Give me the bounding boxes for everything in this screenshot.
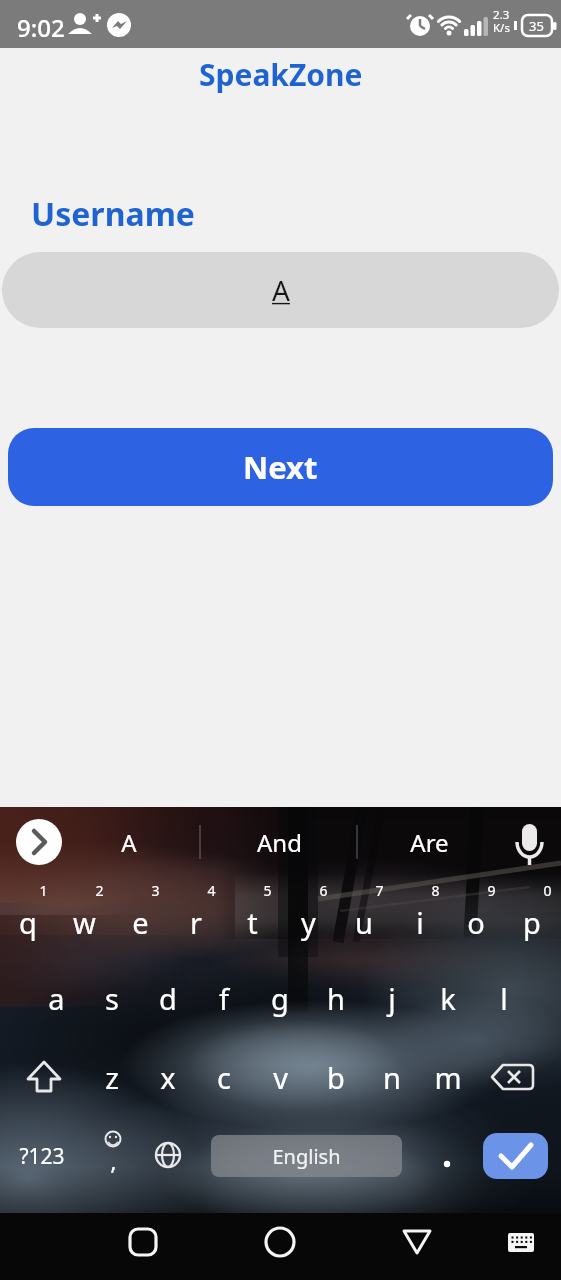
staticText: And [257, 826, 302, 859]
button[interactable]: b [308, 1048, 364, 1106]
button[interactable]: n [364, 1048, 420, 1106]
staticText: 3 [151, 881, 160, 900]
button[interactable]: Next [8, 428, 553, 506]
staticText: 7 [375, 881, 384, 900]
staticText: w [73, 903, 96, 942]
staticText: l [500, 979, 508, 1018]
staticText: 8 [431, 881, 440, 900]
staticText: ?123 [19, 1142, 65, 1171]
staticText: s [105, 979, 119, 1018]
button[interactable] [503, 815, 555, 869]
staticText: A [121, 826, 137, 859]
staticText: o [467, 903, 485, 942]
button[interactable]: q [0, 893, 56, 951]
staticText: 1 [39, 881, 48, 900]
staticText: v [273, 1058, 288, 1097]
staticText: Are [410, 826, 449, 859]
staticText: 2.3 K/s [493, 7, 510, 36]
staticText: p [523, 903, 541, 942]
button[interactable]: o [448, 893, 504, 951]
staticText: , [110, 1144, 117, 1177]
button[interactable]: g [252, 969, 308, 1027]
staticText: 9 [487, 881, 496, 900]
button[interactable]: a [28, 969, 84, 1027]
button[interactable]: English [211, 1135, 402, 1177]
staticText: i [416, 903, 424, 942]
staticText: 6 [319, 881, 328, 900]
button[interactable]: t [224, 893, 280, 951]
button[interactable]: j [364, 969, 420, 1027]
staticText: j [388, 979, 396, 1018]
button[interactable] [16, 1049, 72, 1107]
button[interactable] [483, 1133, 548, 1179]
staticText: 35 [529, 17, 544, 35]
button[interactable]: k [420, 969, 476, 1027]
staticText: r [190, 903, 202, 942]
button[interactable]: Are [394, 824, 464, 860]
staticText: n [383, 1058, 401, 1097]
staticText: t [247, 903, 258, 942]
button[interactable]: e [112, 893, 168, 951]
button[interactable]: m [420, 1048, 476, 1106]
staticText: a [48, 979, 65, 1018]
button[interactable] [391, 1216, 443, 1268]
staticText: h [327, 979, 345, 1018]
button[interactable] [88, 1125, 138, 1179]
button[interactable]: s [84, 969, 140, 1027]
staticText: z [105, 1058, 119, 1097]
button[interactable]: w [56, 893, 112, 951]
button[interactable]: v [252, 1048, 308, 1106]
staticText: English [272, 1143, 341, 1170]
staticText: m [434, 1058, 462, 1097]
button[interactable]: h [308, 969, 364, 1027]
staticText: d [159, 979, 177, 1018]
staticText: 5 [263, 881, 272, 900]
button[interactable]: A [2, 252, 559, 328]
staticText: 0 [543, 881, 552, 900]
button[interactable] [117, 1216, 169, 1268]
staticText: SpeakZone [199, 54, 363, 95]
staticText: A [272, 271, 290, 309]
staticText: y [301, 903, 316, 942]
button[interactable] [14, 817, 64, 867]
button[interactable]: r [168, 893, 224, 951]
button[interactable]: p [504, 893, 560, 951]
button[interactable] [486, 1049, 542, 1107]
button[interactable] [254, 1216, 306, 1268]
staticText: c [217, 1058, 231, 1097]
staticText: e [132, 903, 149, 942]
button[interactable]: A [99, 824, 159, 860]
button[interactable]: u [336, 893, 392, 951]
button[interactable]: ?123 [10, 1137, 74, 1175]
button[interactable]: f [196, 969, 252, 1027]
staticText: q [19, 903, 37, 942]
staticText: 2 [95, 881, 104, 900]
button[interactable]: And [244, 824, 314, 860]
button[interactable]: d [140, 969, 196, 1027]
staticText: x [160, 1058, 176, 1097]
button[interactable]: x [140, 1048, 196, 1106]
button[interactable] [495, 1216, 547, 1268]
button[interactable] [421, 1133, 471, 1181]
staticText: f [219, 979, 229, 1018]
staticText: u [355, 903, 373, 942]
staticText: Username [31, 192, 195, 236]
button[interactable]: l [476, 969, 532, 1027]
staticText: g [271, 979, 289, 1018]
staticText: Next [243, 446, 318, 488]
button[interactable] [142, 1127, 194, 1179]
button[interactable]: c [196, 1048, 252, 1106]
staticText: 4 [207, 881, 216, 900]
staticText: 9:02 [17, 11, 65, 44]
staticText: k [440, 979, 456, 1018]
button[interactable]: y [280, 893, 336, 951]
button[interactable]: i [392, 893, 448, 951]
button[interactable]: z [84, 1048, 140, 1106]
staticText: b [327, 1058, 345, 1097]
